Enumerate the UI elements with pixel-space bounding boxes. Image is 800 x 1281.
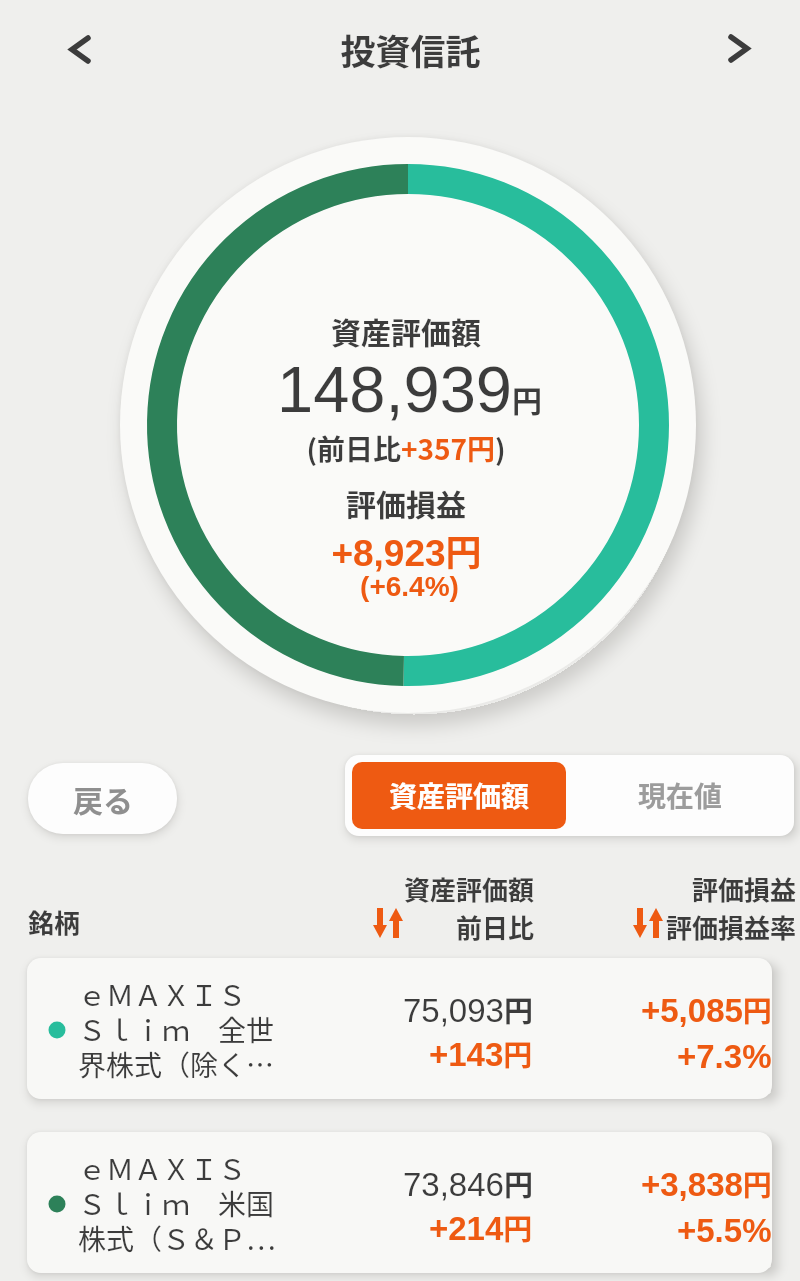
staticText: ｅＭＡＸＩＳ Ｓｌｉｍ 全世 界株式（除く⋯ xyxy=(78,974,275,1084)
staticText: +7.3% xyxy=(677,1038,772,1075)
staticText: 評価損益率 xyxy=(666,908,797,946)
staticText: +8,923円 xyxy=(331,524,482,576)
staticText: 73,846円 xyxy=(403,1162,533,1204)
staticText: +214円 xyxy=(429,1206,533,1248)
staticText: +143円 xyxy=(429,1032,533,1074)
staticText: 投資信託 xyxy=(340,24,481,75)
staticText: (前日比+357円) xyxy=(306,428,506,469)
staticText: 148,939円 xyxy=(277,353,542,426)
staticText: 現在値 xyxy=(638,775,723,816)
staticText: 評価損益 xyxy=(692,870,797,908)
staticText: (+6.4%) xyxy=(360,571,459,602)
button[interactable]: 現在値 xyxy=(566,762,794,829)
button[interactable]: 資産評価額 xyxy=(352,762,566,829)
staticText: 戻る xyxy=(73,777,133,820)
staticText: 評価損益 xyxy=(346,481,466,524)
button[interactable] xyxy=(27,958,772,1099)
staticText: ｅＭＡＸＩＳ Ｓｌｉｍ 米国 株式（Ｓ＆Ｐ⋯ xyxy=(78,1148,276,1258)
staticText: 資産評価額 xyxy=(404,870,535,908)
staticText: +5.5% xyxy=(677,1212,772,1249)
button[interactable] xyxy=(720,29,760,69)
staticText: 資産評価額 xyxy=(331,309,481,352)
button[interactable] xyxy=(27,1132,772,1273)
staticText: +3,838円 xyxy=(641,1162,772,1204)
staticText: 銘柄 xyxy=(28,903,81,941)
button[interactable]: 戻る xyxy=(28,763,177,834)
staticText: +5,085円 xyxy=(641,988,772,1030)
button[interactable] xyxy=(58,30,98,70)
staticText: 前日比 xyxy=(456,908,535,946)
staticText: 75,093円 xyxy=(403,988,533,1030)
staticText: 資産評価額 xyxy=(389,775,530,816)
